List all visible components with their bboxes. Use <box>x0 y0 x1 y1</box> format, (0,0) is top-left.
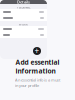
staticText: Add essential information <box>15 58 59 75</box>
staticText: + <box>34 46 39 56</box>
staticText: Details <box>17 0 30 5</box>
staticText: An essential info is a must in your prof… <box>15 77 60 88</box>
staticText: PERSONAL <box>17 6 30 9</box>
staticText: WORK <box>19 23 28 26</box>
button[interactable]: Add <box>33 47 41 55</box>
